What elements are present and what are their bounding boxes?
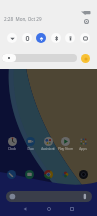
button[interactable]: Flashlight — [65, 33, 75, 43]
button[interactable]: Phone — [7, 170, 16, 179]
staticText: 2:28 Mon, Oct 29 — [4, 16, 42, 22]
button[interactable]: Clock — [3, 137, 21, 151]
button[interactable]: Duo — [21, 137, 39, 151]
button[interactable]: Settings — [82, 17, 91, 26]
button[interactable]: Photos — [61, 170, 70, 179]
button[interactable]: Search — [6, 191, 92, 202]
button[interactable]: Recents — [66, 203, 78, 215]
button[interactable]: Apps — [74, 137, 92, 151]
button[interactable]: Camera — [79, 170, 88, 179]
staticText: Apps — [79, 147, 87, 151]
staticText: Play Store — [58, 147, 73, 151]
button[interactable]: Brightness — [2, 54, 77, 62]
button[interactable]: Home — [43, 203, 55, 215]
button[interactable]: Play Store — [56, 137, 74, 151]
button[interactable]: Do not disturb — [36, 33, 46, 43]
button[interactable]: Auto-rotate — [22, 33, 32, 43]
button[interactable]: Messages — [25, 170, 34, 179]
button[interactable]: Assistant — [39, 137, 57, 151]
button[interactable]: Back — [19, 203, 31, 215]
button[interactable]: Internet — [7, 33, 17, 43]
button[interactable]: Chrome — [44, 170, 53, 179]
staticText: Duo — [27, 147, 34, 151]
staticText: Assistant — [41, 147, 55, 151]
button[interactable]: Auto brightness — [81, 54, 90, 63]
staticText: Clock — [8, 147, 16, 151]
button[interactable]: Screen record — [80, 33, 90, 43]
button[interactable]: Bluetooth — [51, 33, 61, 43]
